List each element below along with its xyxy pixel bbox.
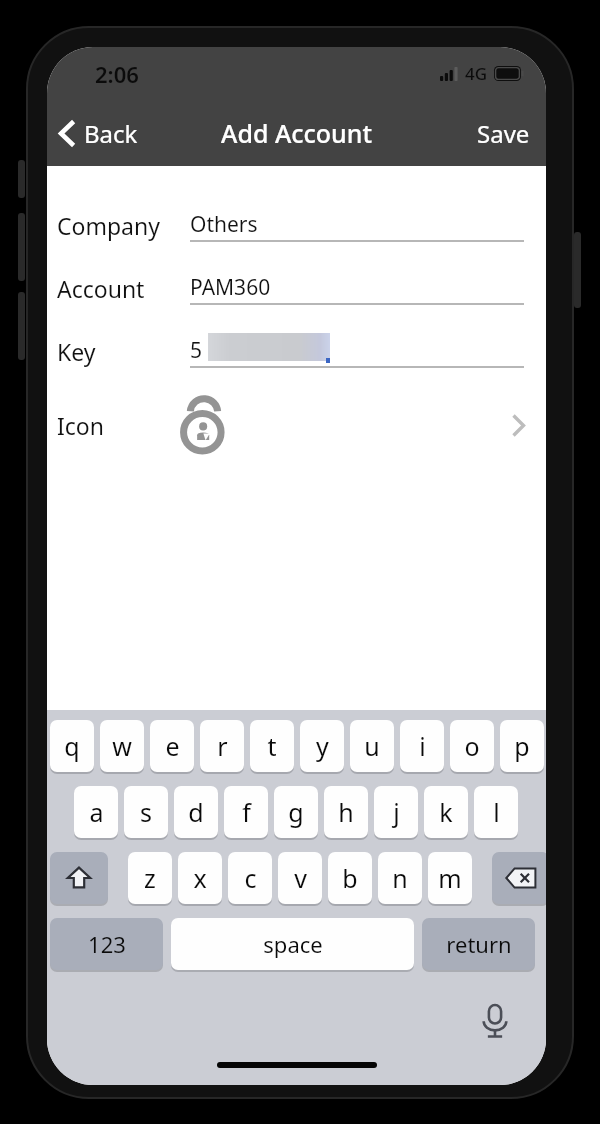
button[interactable]: l [474,786,518,840]
staticText: Account [57,273,145,304]
staticText: y [316,729,329,763]
staticText: h [338,795,354,829]
button[interactable]: 123 [50,918,163,972]
button[interactable]: h [324,786,368,840]
other: Choose icon [512,414,525,437]
staticText: q [64,729,80,763]
button[interactable]: Account [47,259,546,317]
button[interactable]: r [200,720,244,774]
staticText: p [514,729,530,763]
staticText: k [439,795,453,829]
button[interactable]: Company [47,196,546,254]
button[interactable]: Back [47,109,152,158]
staticText: r [217,729,228,763]
button[interactable]: c [228,852,272,906]
staticText: Company [57,210,160,241]
staticText: f [242,795,251,829]
staticText: u [364,729,380,763]
button[interactable]: j [374,786,418,840]
staticText: Back [84,117,138,150]
staticText: d [188,795,204,829]
staticText: g [288,795,304,829]
button[interactable]: b [328,852,372,906]
staticText: t [267,729,277,763]
button[interactable]: o [450,720,494,774]
button[interactable]: d [174,786,218,840]
button[interactable]: q [50,720,94,774]
staticText: s [140,795,152,829]
staticText: space [263,929,323,959]
button[interactable]: v [278,852,322,906]
staticText: Icon [57,410,104,441]
staticText: 5 [190,336,203,365]
staticText: 4G [465,62,488,85]
button[interactable]: k [424,786,468,840]
button[interactable]: Key [47,322,546,380]
staticText: 2:06 [95,59,139,89]
staticText: i [419,729,426,763]
staticText: o [464,729,480,763]
button[interactable]: g [274,786,318,840]
staticText: w [112,729,132,763]
button[interactable]: Icon [47,384,546,466]
button[interactable]: return [422,918,535,972]
button[interactable]: n [378,852,422,906]
button[interactable]: i [400,720,444,774]
staticText: j [393,795,400,829]
staticText: Key [57,336,96,367]
button[interactable]: y [300,720,344,774]
staticText: PAM360 [190,273,271,302]
button[interactable]: Save [461,109,546,158]
staticText: n [392,861,408,895]
staticText: v [294,861,307,895]
staticText: m [438,861,462,895]
staticText: return [446,929,512,959]
button[interactable]: x [178,852,222,906]
button[interactable]: m [428,852,472,906]
staticText: c [244,861,257,895]
staticText: l [493,795,500,829]
staticText: z [144,861,156,895]
button[interactable]: e [150,720,194,774]
button[interactable]: p [500,720,544,774]
staticText: Save [477,117,530,150]
staticText: a [89,795,104,829]
button[interactable]: Shift [50,852,108,906]
button[interactable]: space [171,918,414,972]
button[interactable]: s [124,786,168,840]
button[interactable]: Delete [492,852,546,906]
staticText: e [165,729,180,763]
button[interactable]: z [128,852,172,906]
button[interactable]: u [350,720,394,774]
staticText: 123 [88,929,126,959]
staticText: Others [190,210,258,239]
staticText: Add Account [221,116,373,150]
button[interactable]: Dictate [474,1000,516,1042]
staticText: x [193,861,207,895]
button[interactable]: w [100,720,144,774]
button[interactable]: f [224,786,268,840]
button[interactable]: a [74,786,118,840]
button[interactable]: t [250,720,294,774]
staticText: b [342,861,358,895]
